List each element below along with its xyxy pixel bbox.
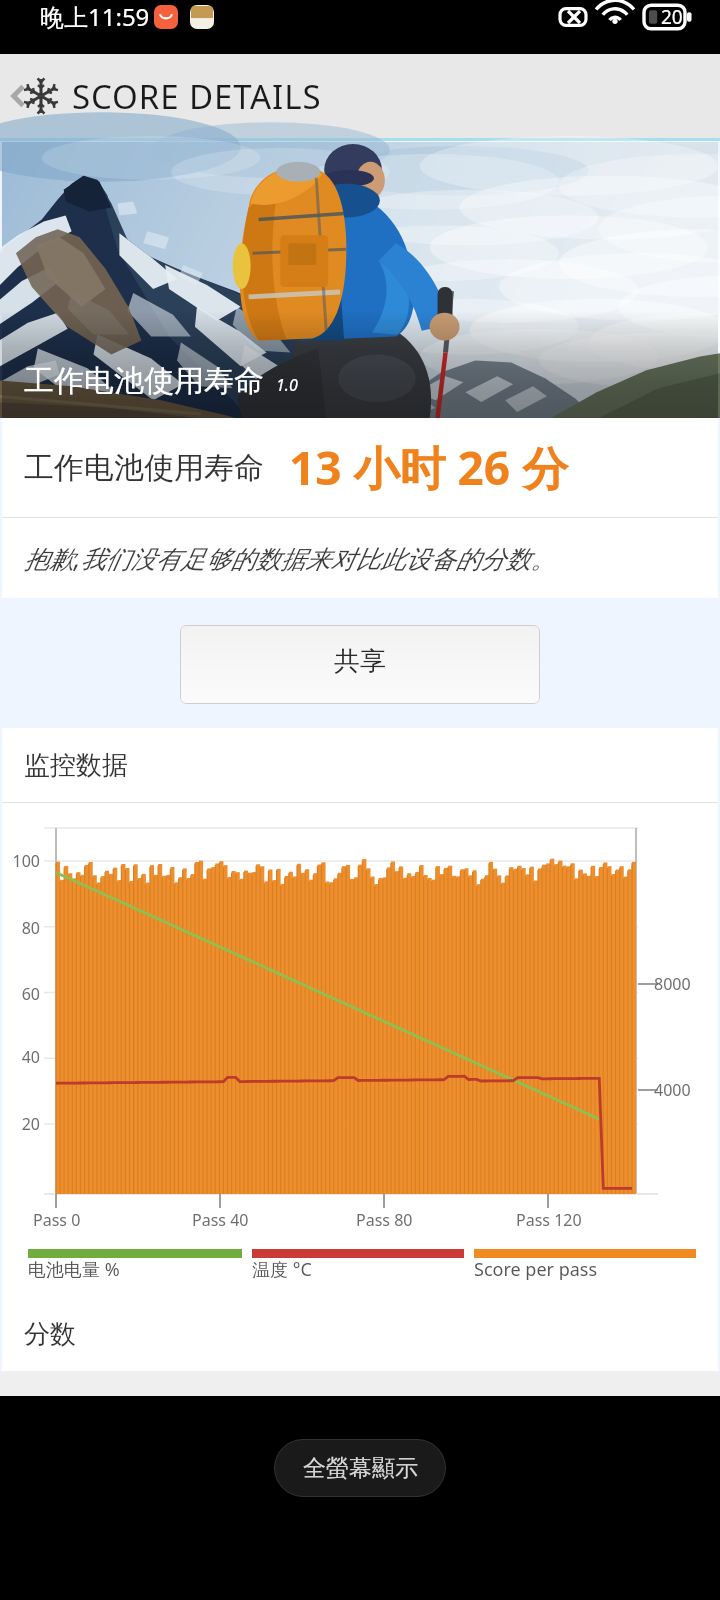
staticText: 工作电池使用寿命 [24,362,264,400]
staticText: 4000 [654,1079,691,1101]
staticText: Score per pass [474,1257,598,1282]
staticText: Pass 120 [516,1209,582,1231]
staticText: SCORE DETAILS [72,74,322,119]
staticText: 40 [2,1046,40,1068]
button[interactable]: 全螢幕顯示 [274,1439,446,1497]
staticText: Pass 40 [192,1209,249,1231]
staticText: 抱歉,我们没有足够的数据来对比此设备的分数。 [24,541,556,575]
staticText: 1.0 [276,374,298,396]
staticText: 共享 [334,645,386,678]
staticText: 100 [2,850,40,872]
button[interactable]: 监控数据 [24,728,718,802]
staticText: 80 [2,917,40,939]
staticText: 分数 [24,1318,76,1351]
staticText: 晚上11:59 [40,0,150,33]
button[interactable]: Back [0,54,66,138]
button[interactable]: 工作电池使用寿命 [2,142,718,418]
staticText: Pass 80 [356,1209,413,1231]
staticText: 20 [2,1113,40,1135]
staticText: 工作电池使用寿命 [24,449,264,487]
staticText: 60 [2,983,40,1005]
staticText: 8000 [654,973,691,995]
button[interactable]: 共享 [180,625,540,704]
staticText: 电池电量 % [28,1257,120,1282]
staticText: 全螢幕顯示 [303,1454,418,1483]
staticText: Pass 0 [33,1209,81,1231]
staticText: 20 [661,4,683,30]
staticText: 13 小时 26 分 [289,436,569,499]
staticText: 监控数据 [24,749,128,782]
staticText: 温度 °C [252,1257,312,1282]
button[interactable]: 分数 [24,1297,718,1371]
